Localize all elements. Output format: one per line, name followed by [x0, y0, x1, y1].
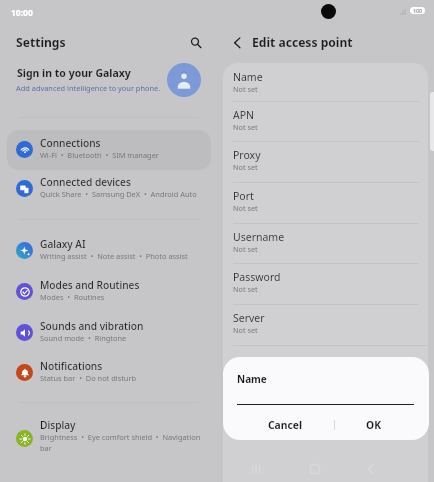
staticText: Status bar • Do not disturb [40, 373, 211, 383]
staticText: Username [233, 230, 285, 244]
button[interactable]: Connections [7, 130, 211, 170]
staticText: Not set [233, 84, 258, 94]
staticText: Port [233, 189, 254, 203]
staticText: OK [366, 418, 381, 432]
button[interactable]: Password [223, 263, 428, 304]
staticText: 100 [413, 7, 422, 14]
button[interactable]: OK [335, 410, 429, 440]
staticText: Not set [233, 162, 258, 172]
staticText: Settings [16, 34, 66, 50]
staticText: Display [40, 419, 76, 432]
button[interactable]: Port [223, 182, 428, 223]
staticText: Name [233, 70, 263, 84]
staticText: Not set [233, 122, 258, 132]
button[interactable]: Cancel [223, 410, 334, 440]
button[interactable]: APN [223, 101, 428, 142]
staticText: Sounds and vibration [40, 319, 144, 333]
button[interactable]: Name [223, 63, 428, 104]
staticText: Writing assist • Note assist • Photo ass… [40, 251, 211, 261]
staticText: Not set [233, 244, 258, 254]
staticText: Not set [233, 203, 258, 213]
button[interactable]: Notifications [7, 353, 211, 393]
button[interactable]: Sign in to your Galaxy [0, 60, 217, 100]
staticText: Notifications [40, 359, 103, 373]
button[interactable]: Search [184, 31, 206, 53]
staticText: Galaxy AI [40, 237, 86, 251]
staticText: Connections [40, 136, 101, 150]
staticText: Wi-Fi • Bluetooth • SIM manager [40, 150, 211, 160]
staticText: Modes and Routines [40, 278, 140, 292]
button[interactable]: Galaxy AI [7, 231, 211, 271]
button[interactable]: Server [223, 304, 428, 345]
staticText: Not set [233, 284, 258, 294]
button[interactable]: Connected devices [7, 169, 211, 209]
staticText: Proxy [233, 148, 261, 162]
staticText: Password [233, 270, 281, 284]
staticText: Connected devices [40, 175, 131, 189]
staticText: Server [233, 311, 265, 325]
staticText: Brightness • Eye comfort shield • Naviga… [40, 432, 203, 453]
staticText: Modes • Routines [40, 292, 211, 302]
staticText: Not set [233, 325, 258, 335]
staticText: APN [233, 108, 255, 122]
staticText: Quick Share • Samsung DeX • Android Auto [40, 189, 211, 199]
staticText: Name [237, 372, 267, 386]
button[interactable]: Display [7, 419, 211, 459]
staticText: Sign in to your Galaxy [17, 66, 131, 80]
staticText: Edit access point [252, 34, 353, 50]
staticText: 10:00 [11, 7, 33, 19]
button[interactable]: Sounds and vibration [7, 313, 211, 353]
button[interactable]: Proxy [223, 141, 428, 182]
button[interactable]: Modes and Routines [7, 272, 211, 312]
staticText: Sound mode • Ringtone [40, 333, 211, 343]
staticText: Add advanced intelligence to your phone. [16, 83, 161, 93]
button[interactable]: Username [223, 223, 428, 264]
staticText: Cancel [268, 418, 303, 432]
button[interactable]: Back [225, 31, 247, 53]
